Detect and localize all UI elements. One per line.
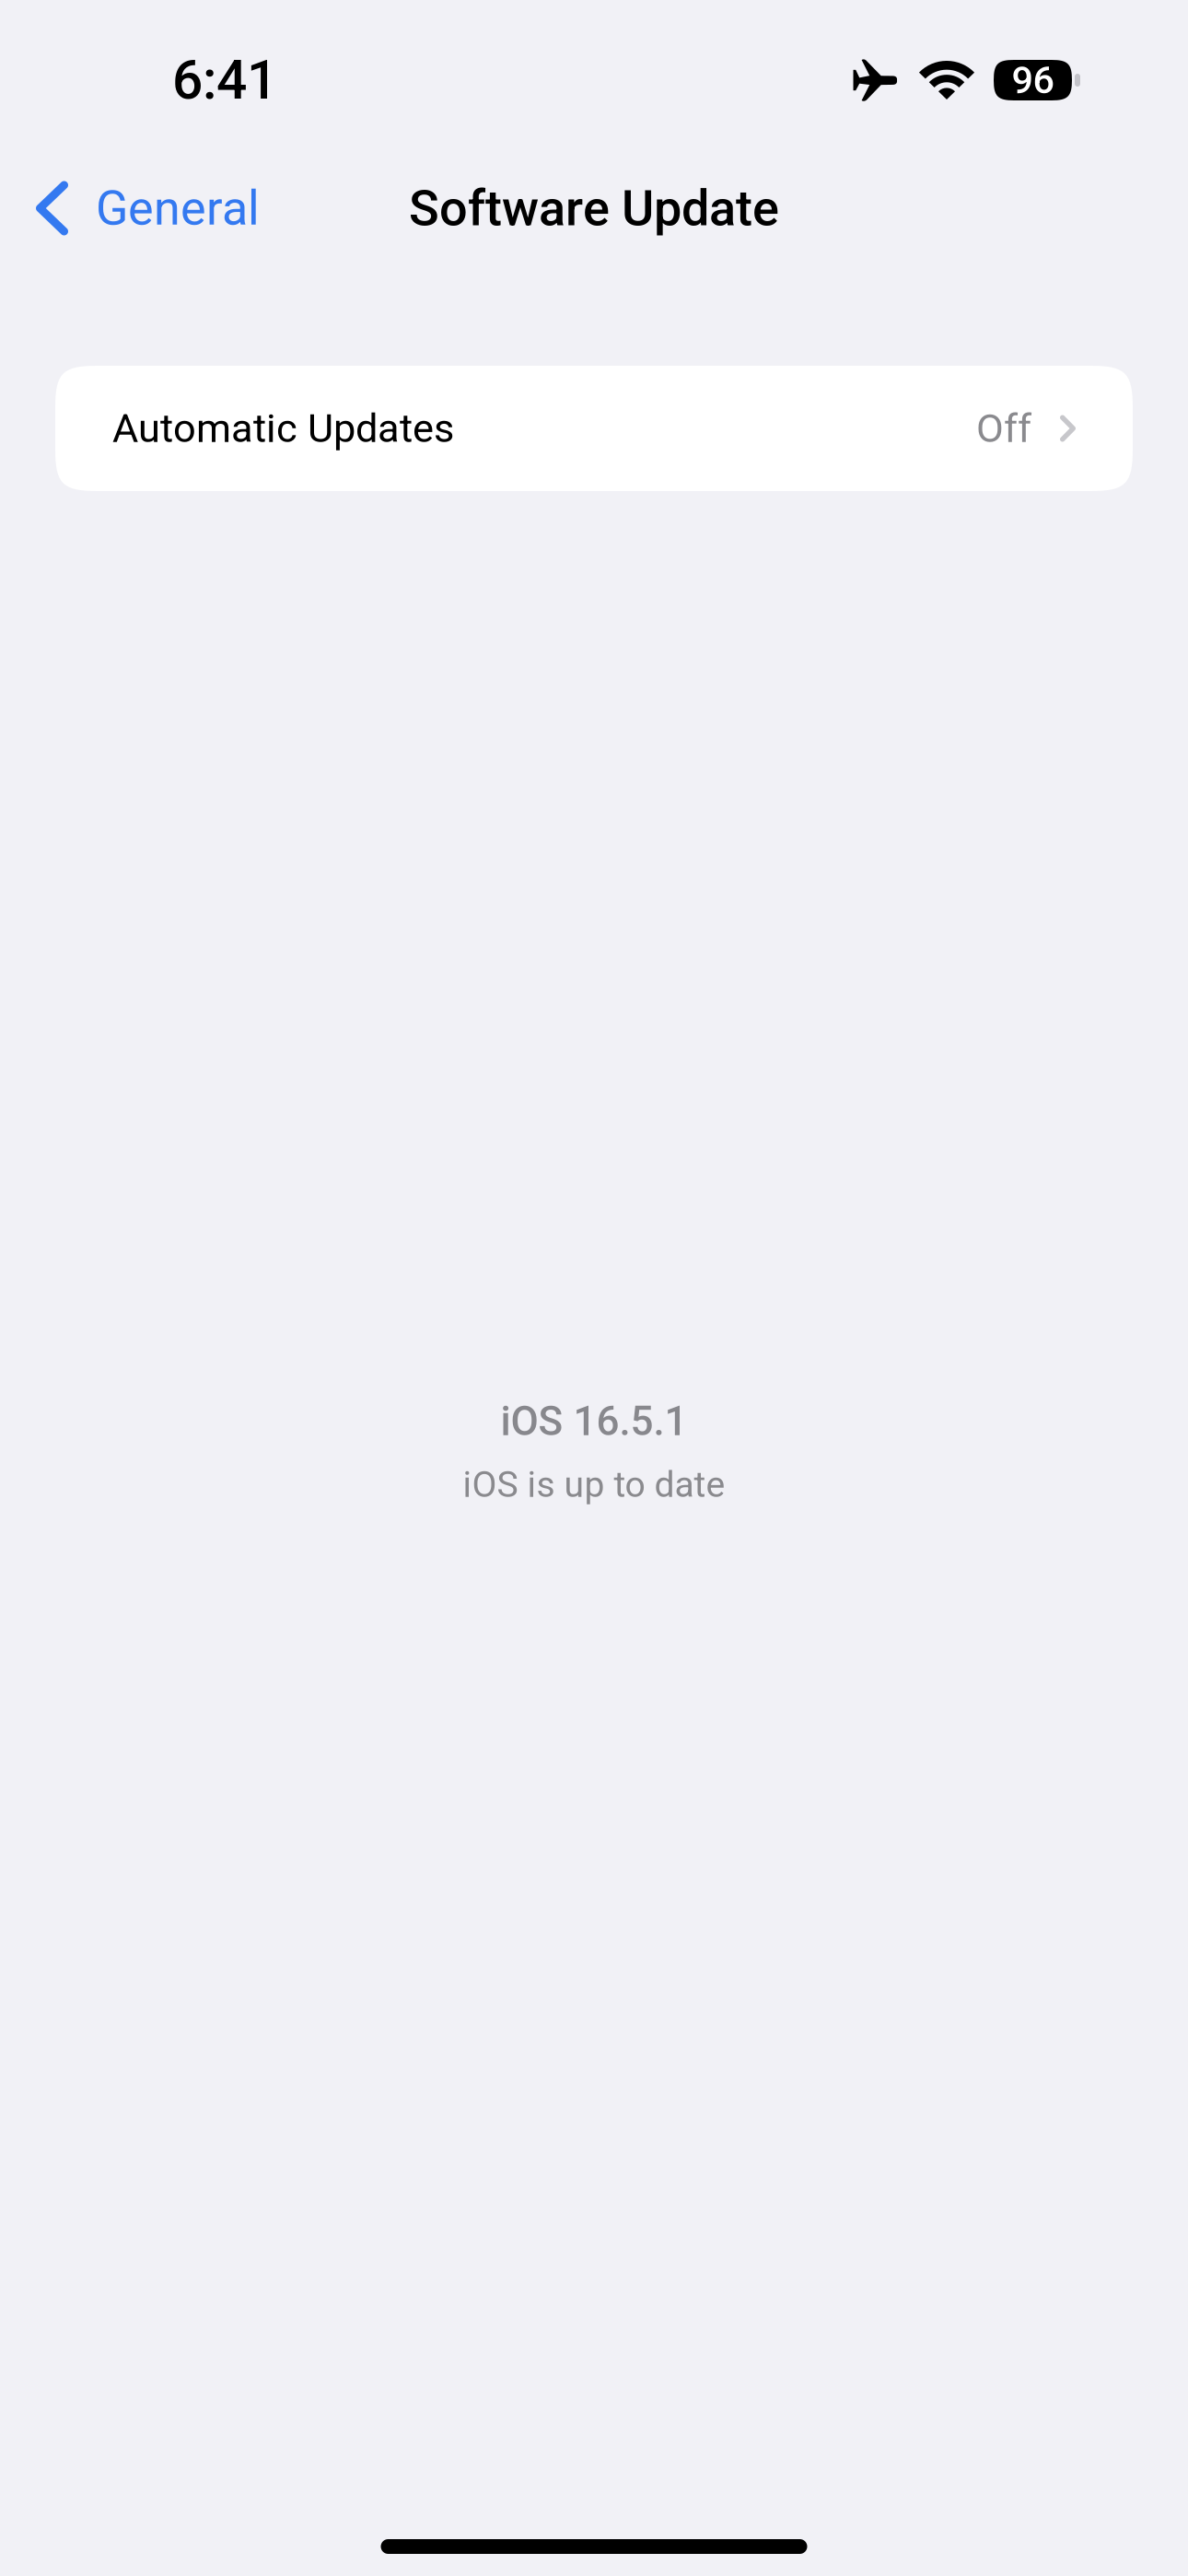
- button[interactable]: General: [36, 162, 287, 255]
- staticText: Off: [976, 405, 1031, 452]
- staticText: iOS is up to date: [463, 1464, 725, 1506]
- staticText: General: [96, 180, 260, 236]
- button[interactable]: Automatic Updates: [55, 366, 1133, 491]
- staticText: Software Update: [409, 179, 779, 237]
- staticText: iOS 16.5.1: [501, 1398, 687, 1445]
- staticText: 96: [1012, 58, 1054, 102]
- staticText: Automatic Updates: [112, 405, 454, 452]
- staticText: 6:41: [172, 48, 277, 112]
